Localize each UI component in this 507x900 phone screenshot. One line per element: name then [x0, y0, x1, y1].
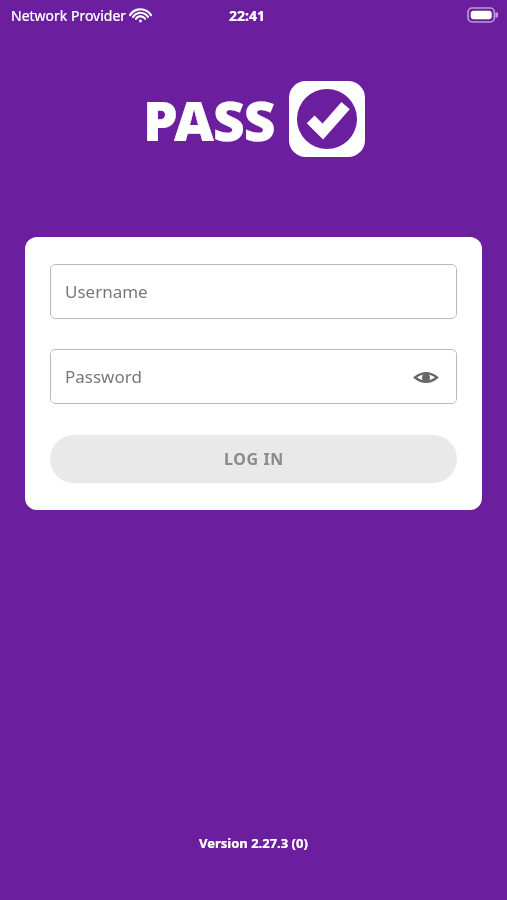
button[interactable]: Username	[50, 264, 457, 319]
staticText: PASS	[143, 82, 275, 157]
staticText: Version 2.27.3 (0)	[199, 834, 308, 852]
staticText: 22:41	[229, 6, 265, 25]
button[interactable]: Password	[50, 349, 457, 404]
staticText: Network Provider	[11, 6, 127, 25]
staticText: Username	[65, 280, 148, 303]
staticText: Password	[65, 365, 142, 388]
button[interactable]: LOG IN	[50, 435, 457, 483]
staticText: LOG IN	[224, 448, 284, 470]
button[interactable]: Show password	[410, 361, 442, 393]
